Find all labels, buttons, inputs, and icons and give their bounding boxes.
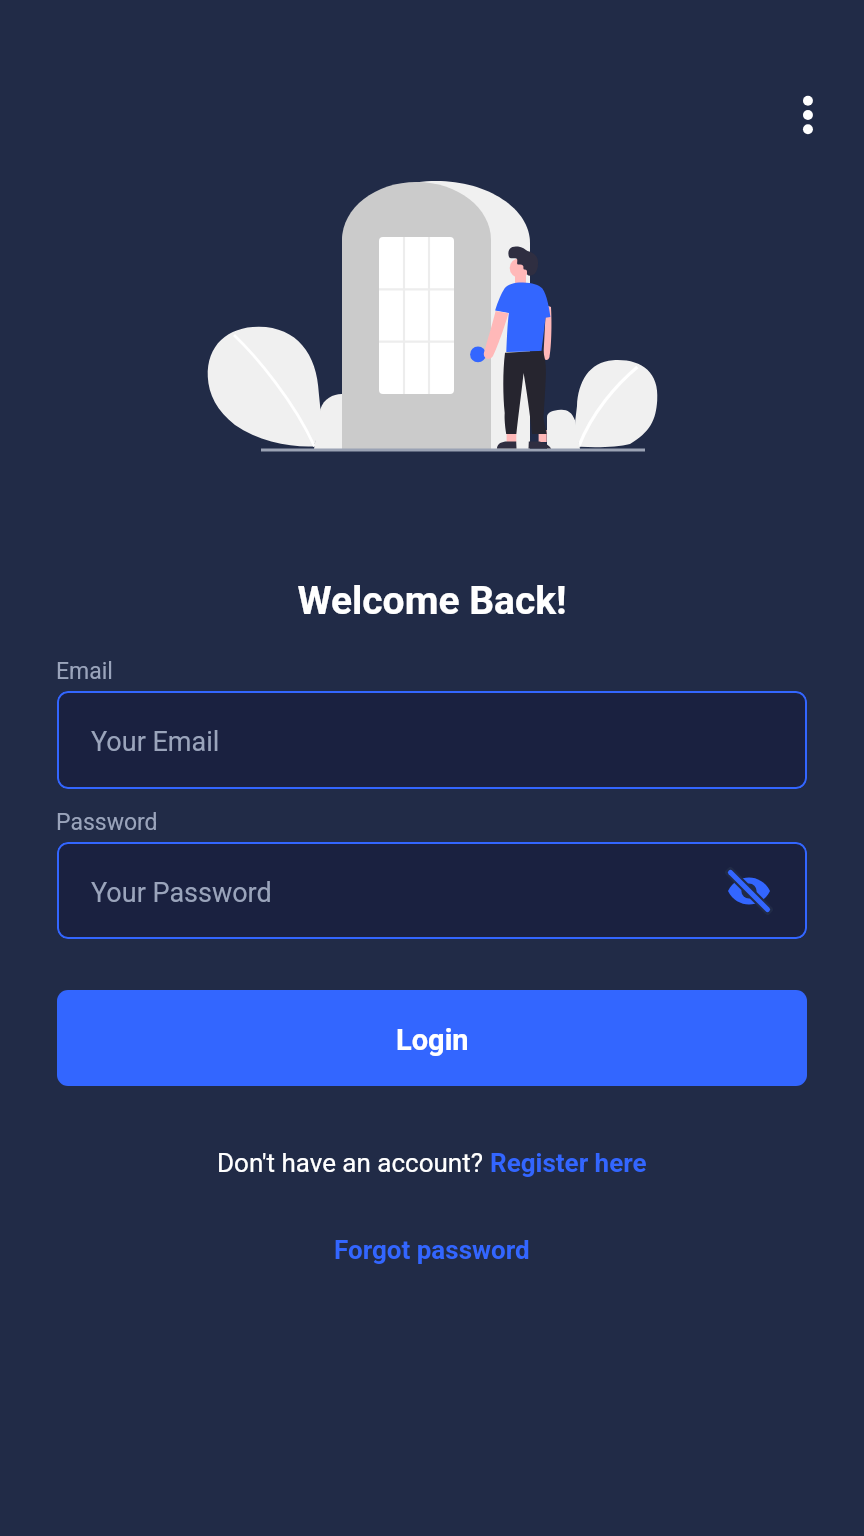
button[interactable]: Login: [57, 990, 807, 1086]
button[interactable]: Your Email: [57, 691, 807, 789]
staticText: Email: [56, 658, 113, 685]
button[interactable]: More options: [774, 82, 839, 147]
button[interactable]: Your Password: [57, 842, 807, 939]
staticText: Your Email: [91, 726, 220, 758]
staticText: Your Password: [91, 877, 272, 909]
staticText: Don't have an account?: [217, 1148, 490, 1178]
staticText: Forgot password: [334, 1235, 530, 1265]
staticText: Password: [56, 809, 158, 836]
button[interactable]: Toggle password visibility: [718, 860, 780, 922]
button[interactable]: Forgot password: [324, 1231, 540, 1269]
staticText: Login: [396, 1023, 469, 1057]
staticText: Welcome Back!: [0, 578, 864, 624]
button[interactable]: Register here: [490, 1148, 647, 1178]
staticText: Register here: [490, 1148, 647, 1178]
